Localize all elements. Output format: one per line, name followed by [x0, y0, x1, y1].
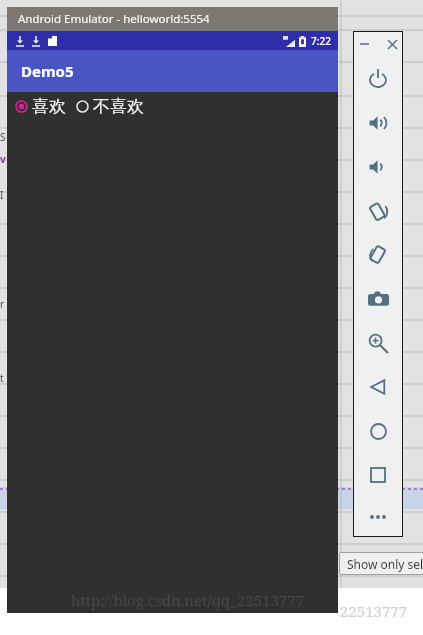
staticText: 22513777 — [340, 601, 408, 621]
button[interactable]: More — [353, 497, 403, 537]
button[interactable]: Rotate right — [353, 233, 403, 277]
staticText: http://blog.csdn.net/qq_22513777 — [71, 590, 305, 610]
button[interactable]: Close — [384, 36, 400, 52]
staticText: Demo5 — [21, 61, 74, 81]
staticText: Show only sel — [347, 556, 423, 572]
button[interactable]: Volume up — [353, 101, 403, 145]
staticText: I — [0, 188, 4, 202]
staticText: Android Emulator - helloworld:5554 — [18, 11, 210, 27]
button[interactable]: Screenshot — [353, 277, 403, 321]
staticText: r — [0, 297, 5, 311]
button[interactable]: Recents — [353, 453, 403, 497]
button[interactable]: 不喜欢 — [74, 94, 146, 119]
button[interactable]: Zoom — [353, 321, 403, 365]
button[interactable]: Volume down — [353, 145, 403, 189]
button[interactable]: 喜欢 — [13, 94, 68, 119]
button[interactable]: Rotate left — [353, 189, 403, 233]
staticText: S — [0, 130, 6, 144]
button[interactable]: Show only sel — [339, 552, 423, 575]
staticText: 不喜欢 — [93, 96, 144, 117]
button[interactable]: Back — [353, 365, 403, 409]
staticText: 7:22 — [311, 34, 331, 48]
button[interactable]: Home — [353, 409, 403, 453]
button[interactable]: Power — [353, 57, 403, 101]
button[interactable]: Minimize — [356, 36, 372, 52]
staticText: 喜欢 — [32, 96, 66, 117]
staticText: v — [0, 152, 6, 166]
staticText: t — [0, 371, 4, 385]
